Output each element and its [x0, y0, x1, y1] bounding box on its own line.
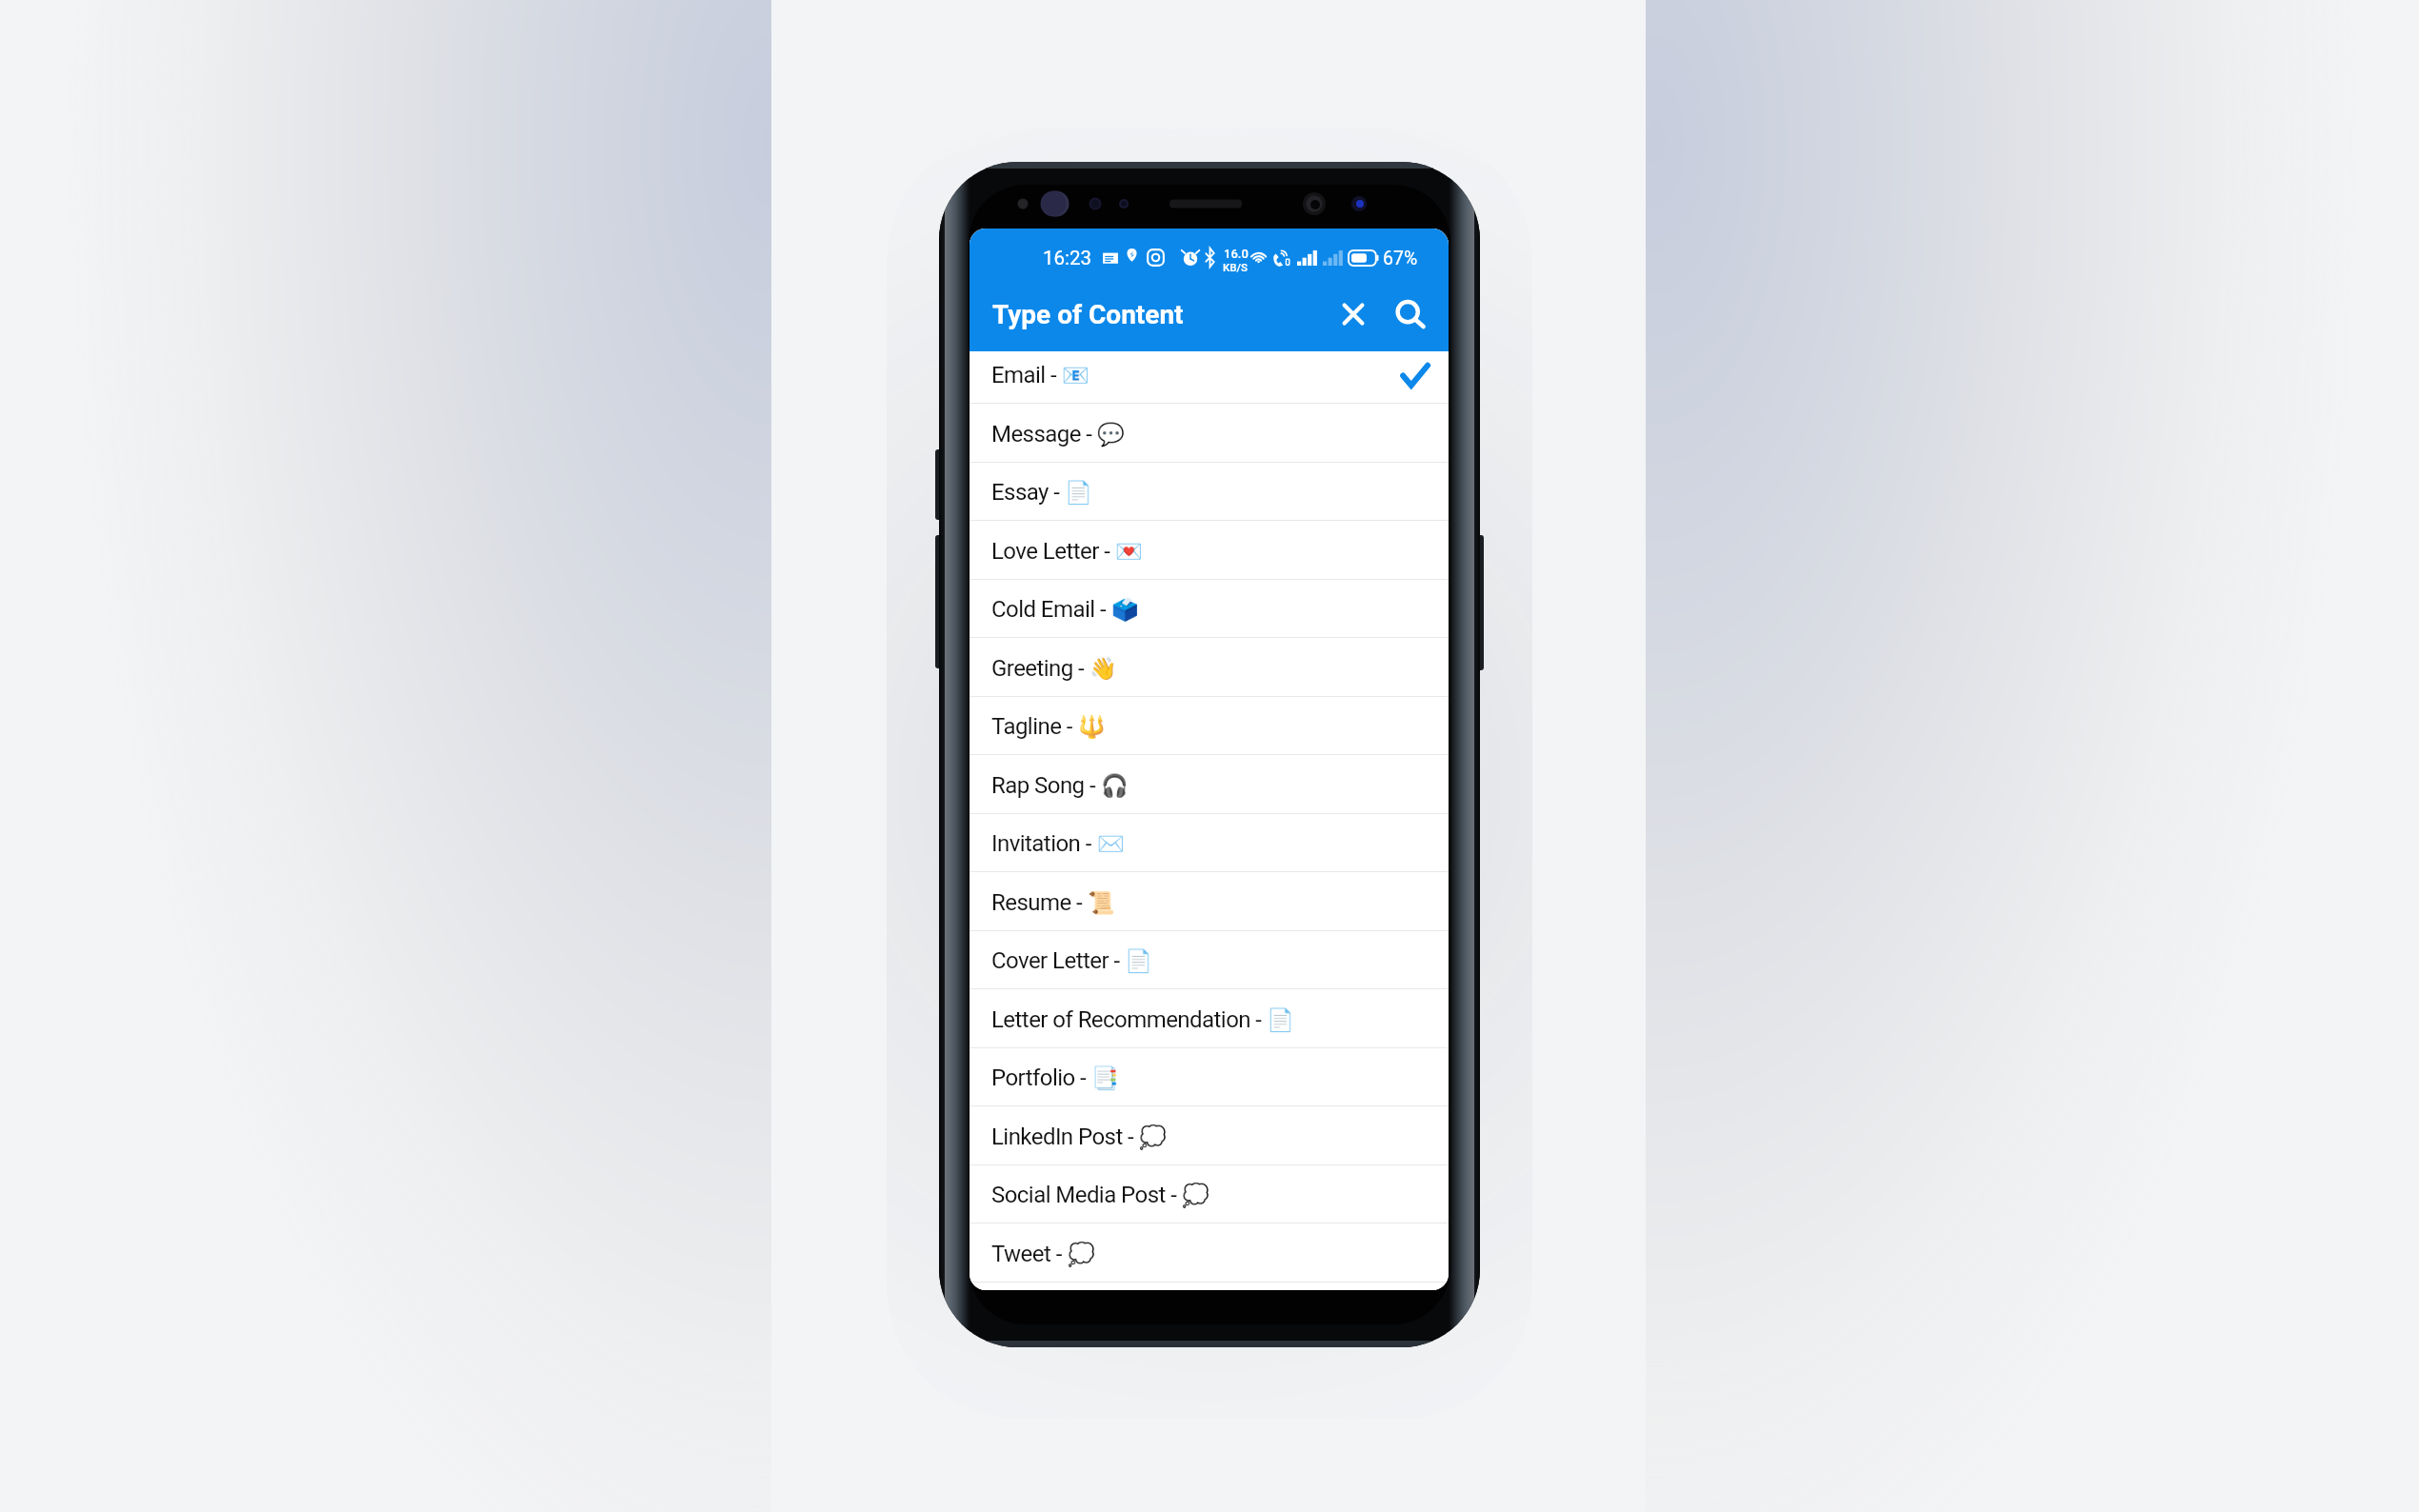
staticText: 💬: [1097, 422, 1125, 448]
staticText: Social Media Post -: [991, 1182, 1182, 1208]
staticText: 📄: [1267, 1007, 1294, 1033]
button[interactable]: Message -: [970, 404, 1449, 463]
staticText: 💌: [1115, 539, 1143, 565]
button[interactable]: Resume -: [970, 872, 1449, 931]
button[interactable]: Rap Song -: [970, 755, 1449, 814]
staticText: Type of Content: [992, 299, 1184, 330]
staticText: Email -: [991, 362, 1062, 388]
staticText: 16.0: [1224, 247, 1249, 261]
button[interactable]: Cover Letter -: [970, 930, 1449, 989]
staticText: Cold Email -: [991, 596, 1111, 623]
staticText: Tagline -: [991, 713, 1078, 740]
button[interactable]: LinkedIn Post -: [970, 1106, 1449, 1165]
staticText: Greeting -: [991, 655, 1090, 682]
button[interactable]: Tweet -: [970, 1224, 1449, 1283]
staticText: 📑: [1091, 1065, 1119, 1091]
staticText: 📄: [1125, 948, 1152, 974]
button[interactable]: Love Letter -: [970, 521, 1449, 580]
staticText: Rap Song -: [991, 772, 1101, 799]
button[interactable]: Close: [1326, 287, 1380, 341]
button[interactable]: Social Media Post -: [970, 1164, 1449, 1224]
staticText: 🗳️: [1111, 597, 1139, 623]
button[interactable]: Email -: [970, 345, 1449, 404]
staticText: Cover Letter -: [991, 947, 1125, 974]
staticText: 💭: [1182, 1183, 1209, 1208]
button[interactable]: Search: [1383, 287, 1437, 341]
staticText: Letter of Recommendation -: [991, 1006, 1267, 1033]
button[interactable]: Invitation -: [970, 813, 1449, 872]
staticText: Essay -: [991, 479, 1065, 506]
button[interactable]: Essay -: [970, 462, 1449, 521]
staticText: Resume -: [991, 889, 1088, 916]
button[interactable]: Tagline -: [970, 696, 1449, 755]
staticText: 🎧: [1101, 773, 1129, 799]
staticText: 🔱: [1078, 714, 1106, 740]
button[interactable]: Letter of Recommendation -: [970, 989, 1449, 1048]
staticText: Portfolio -: [991, 1064, 1091, 1091]
staticText: Message -: [991, 421, 1097, 448]
staticText: 16:23: [1043, 247, 1092, 269]
staticText: 💭: [1068, 1242, 1095, 1267]
staticText: LinkedIn Post -: [991, 1124, 1139, 1150]
staticText: 📧: [1062, 363, 1090, 388]
staticText: 💭: [1139, 1124, 1167, 1150]
staticText: KB/S: [1223, 261, 1249, 273]
staticText: 📄: [1065, 480, 1092, 506]
staticText: 👋: [1090, 656, 1117, 682]
staticText: ✉️: [1097, 831, 1125, 857]
staticText: Tweet -: [991, 1241, 1068, 1267]
button[interactable]: Portfolio -: [970, 1047, 1449, 1106]
staticText: Love Letter -: [991, 538, 1115, 565]
staticText: Invitation -: [991, 830, 1097, 857]
staticText: 📜: [1088, 890, 1115, 916]
button[interactable]: Cold Email -: [970, 579, 1449, 638]
staticText: 67%: [1383, 248, 1418, 269]
button[interactable]: Greeting -: [970, 638, 1449, 697]
